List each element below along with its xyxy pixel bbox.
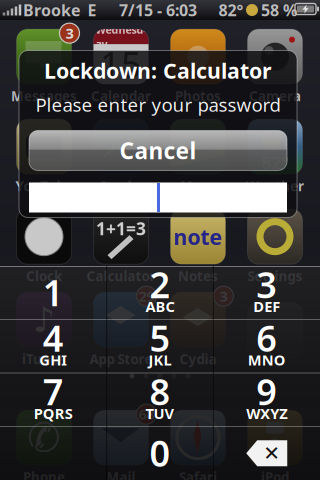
- button[interactable]: Camera: [238, 32, 312, 102]
- button[interactable]: 4: [0, 320, 106, 373]
- button[interactable]: Phone: [7, 413, 81, 480]
- staticText: Cancel: [119, 135, 196, 165]
- button[interactable]: YouTube: [7, 122, 81, 192]
- button[interactable]: [0, 427, 106, 480]
- button[interactable]: 1: [0, 266, 106, 319]
- staticText: Lockdown: Calculator: [44, 56, 272, 85]
- staticText: 9: [256, 367, 277, 415]
- staticText: Stocks: [99, 177, 142, 195]
- button[interactable]: App: [238, 295, 312, 365]
- staticText: 82°: [261, 151, 288, 174]
- staticText: Cydia: [179, 350, 216, 368]
- staticText: JKL: [149, 350, 172, 369]
- staticText: 29: [138, 286, 154, 306]
- staticText: ♪: [33, 300, 55, 339]
- button[interactable]: 5: [107, 320, 213, 373]
- staticText: 4: [43, 314, 64, 362]
- button[interactable]: Cancel: [29, 130, 287, 170]
- button[interactable]: Delete: [214, 427, 320, 480]
- staticText: E: [87, 0, 96, 21]
- button[interactable]: Calendar: [84, 32, 158, 102]
- staticText: YouTube: [15, 177, 72, 195]
- staticText: Notes: [178, 267, 218, 285]
- staticText: 1: [43, 268, 64, 316]
- button[interactable]: Calculator: [84, 212, 158, 282]
- staticText: DEF: [253, 296, 280, 316]
- button[interactable]: Maps: [161, 122, 235, 192]
- staticText: 82°: [218, 0, 243, 21]
- button[interactable]: Cydia: [161, 295, 235, 365]
- staticText: iPod: [261, 468, 289, 480]
- staticText: Calculator: [86, 267, 155, 285]
- staticText: Messages: [11, 87, 77, 105]
- button[interactable]: Notes: [161, 212, 235, 282]
- staticText: TUV: [146, 403, 175, 423]
- staticText: PQRS: [34, 403, 73, 423]
- staticText: Maps: [180, 177, 216, 195]
- staticText: iTunes: [22, 350, 66, 368]
- staticText: 3: [256, 260, 277, 308]
- button[interactable]: 6: [214, 320, 320, 373]
- staticText: 7: [43, 367, 64, 415]
- staticText: 15: [100, 40, 142, 88]
- staticText: ✆: [27, 415, 61, 460]
- staticText: 6: [256, 314, 277, 362]
- staticText: App Store: [89, 350, 152, 368]
- button[interactable]: 3: [214, 266, 320, 319]
- staticText: 2: [150, 260, 171, 308]
- button[interactable]: Mail: [84, 413, 158, 480]
- staticText: Weather: [246, 177, 304, 195]
- staticText: WXYZ: [246, 403, 287, 423]
- staticText: Settings: [247, 267, 302, 285]
- button[interactable]: iTunes: [7, 295, 81, 365]
- staticText: Safari: [179, 468, 217, 480]
- staticText: 7/15 - 6:03: [119, 0, 197, 21]
- button[interactable]: 0: [107, 427, 213, 480]
- button[interactable]: 7: [0, 373, 106, 426]
- staticText: MNO: [248, 350, 286, 369]
- button[interactable]: Settings: [238, 212, 312, 282]
- button[interactable]: Safari: [161, 413, 235, 480]
- staticText: 1+1=3: [96, 217, 146, 240]
- button[interactable]: Stocks: [84, 122, 158, 192]
- staticText: Phone: [23, 468, 65, 480]
- button[interactable]: Messages: [7, 32, 81, 102]
- button[interactable]: 9: [214, 373, 320, 426]
- staticText: note: [173, 222, 222, 251]
- button[interactable]: 8: [107, 373, 213, 426]
- staticText: Mail: [106, 468, 135, 480]
- staticText: Photos: [175, 87, 221, 105]
- staticText: GHI: [39, 350, 67, 369]
- staticText: 5: [150, 314, 171, 362]
- staticText: ✕: [263, 442, 280, 465]
- staticText: Wednesday: [95, 22, 146, 51]
- staticText: 0: [150, 429, 171, 477]
- staticText: Calendar: [91, 87, 151, 105]
- staticText: 3: [219, 286, 227, 306]
- button[interactable]: iPod: [238, 413, 312, 480]
- staticText: 68: [138, 404, 154, 424]
- button[interactable]: Clock: [7, 212, 81, 282]
- staticText: 8: [150, 367, 171, 415]
- button[interactable]: Photos: [161, 32, 235, 102]
- button[interactable]: Weather: [238, 122, 312, 192]
- button[interactable]: App Store: [84, 295, 158, 365]
- staticText: Clock: [26, 267, 62, 285]
- staticText: Brooke: [23, 0, 81, 21]
- button[interactable]: 2: [107, 266, 213, 319]
- staticText: Please enter your password: [35, 92, 280, 117]
- staticText: 3: [65, 23, 73, 43]
- staticText: ABC: [146, 296, 175, 316]
- staticText: 58 %: [261, 0, 297, 21]
- staticText: Camera: [249, 87, 301, 105]
